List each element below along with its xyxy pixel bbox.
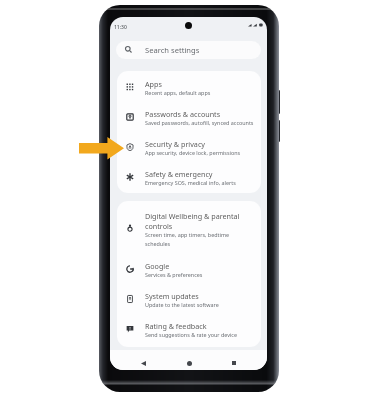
staticText: Passwords & accounts <box>145 109 221 119</box>
staticText: System updates <box>145 291 199 301</box>
staticText: Digital Wellbeing & parental controls <box>145 211 244 231</box>
staticText: App security, device lock, permissions <box>145 149 241 156</box>
button[interactable]: Digital Wellbeing & parental controls <box>117 201 261 253</box>
staticText: Update to the latest software <box>145 301 219 308</box>
staticText: Screen time, app timers, bedtime schedul… <box>145 231 244 247</box>
staticText: Saved passwords, autofill, synced accoun… <box>145 119 254 126</box>
button[interactable]: System updates <box>117 283 261 313</box>
staticText: Emergency SOS, medical info, alerts <box>145 179 236 186</box>
staticText: Rating & feedback <box>145 321 207 331</box>
button[interactable]: Back <box>136 356 150 370</box>
staticText: Apps <box>145 79 162 89</box>
button[interactable]: Apps <box>117 71 261 101</box>
staticText: Google <box>145 261 170 271</box>
button[interactable]: Safety & emergency <box>117 161 261 191</box>
staticText: Recent apps, default apps <box>145 89 211 96</box>
staticText: 11:30 <box>114 24 127 31</box>
staticText: Safety & emergency <box>145 169 213 179</box>
button[interactable]: Recent apps <box>227 356 241 370</box>
button[interactable]: Home <box>182 356 196 370</box>
staticText: Search settings <box>145 45 200 55</box>
button[interactable]: Search settings <box>116 41 261 59</box>
button[interactable]: Rating & feedback <box>117 313 261 343</box>
button[interactable]: Security & privacy <box>117 131 261 161</box>
staticText: Services & preferences <box>145 271 203 278</box>
button[interactable]: Google <box>117 253 261 283</box>
staticText: Security & privacy <box>145 139 206 149</box>
button[interactable]: Passwords & accounts <box>117 101 261 131</box>
staticText: Send suggestions & rate your device <box>145 331 237 338</box>
